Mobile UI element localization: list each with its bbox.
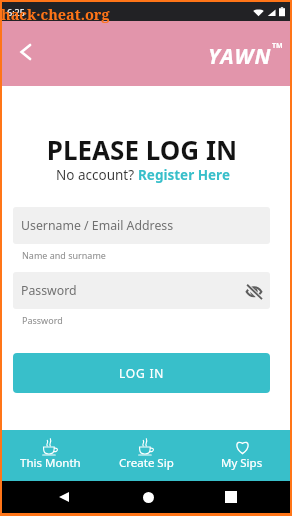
staticText: Create Sip [119, 455, 174, 471]
staticText: 6:25 [7, 6, 25, 18]
staticText: Password [21, 282, 77, 299]
staticText: PLEASE LOG IN [0, 132, 286, 167]
staticText: TM [272, 41, 283, 51]
button[interactable]: Register Here [138, 166, 230, 184]
staticText: This Month [20, 455, 81, 471]
staticText: LOG IN [119, 365, 165, 381]
staticText: hack·cheat.org [1, 4, 110, 24]
button[interactable]: My Sips [194, 430, 290, 481]
staticText: Register Here [138, 166, 230, 184]
button[interactable]: Password [13, 272, 270, 309]
button[interactable]: Create Sip [98, 430, 194, 481]
button[interactable]: Show password [244, 281, 264, 301]
button[interactable]: This Month [2, 430, 98, 481]
staticText: Password [22, 314, 63, 326]
button[interactable]: Recents [204, 481, 258, 513]
button[interactable]: LOG IN [13, 353, 270, 393]
button[interactable]: Username / Email Address [13, 207, 270, 244]
button[interactable]: Back [37, 481, 91, 513]
staticText: Username / Email Address [21, 217, 174, 234]
staticText: YAWN [208, 42, 272, 71]
button[interactable]: Home [121, 481, 175, 513]
staticText: No account? [56, 166, 138, 184]
staticText: My Sips [221, 455, 263, 471]
button[interactable]: Back [5, 32, 45, 72]
staticText: Name and surname [22, 249, 106, 261]
